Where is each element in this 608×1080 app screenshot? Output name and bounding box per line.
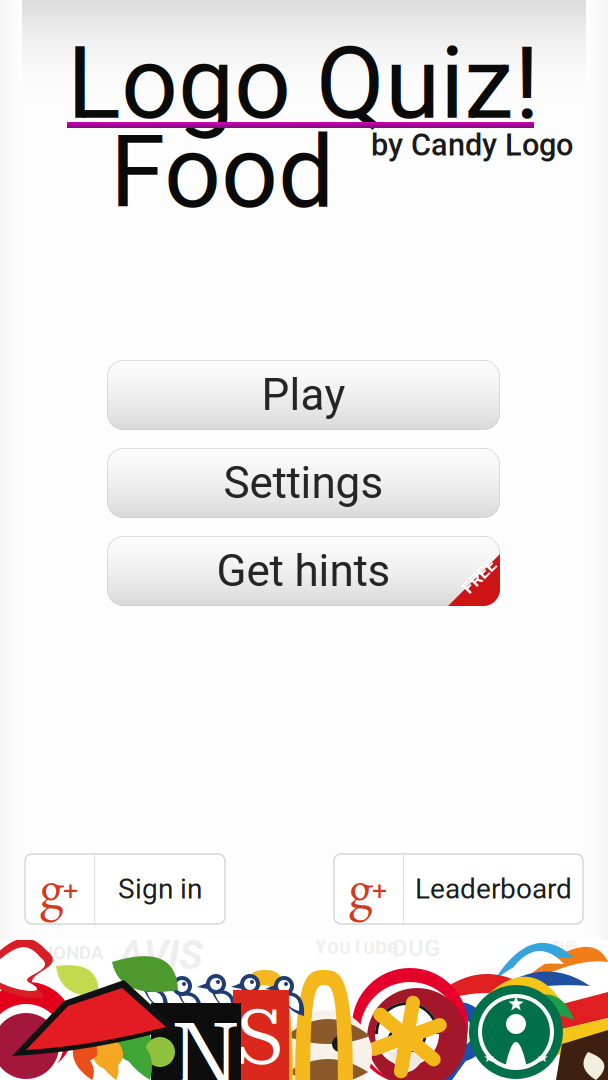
staticText: THE: [552, 938, 577, 954]
staticText: Get hints: [216, 545, 390, 597]
staticText: g: [349, 851, 373, 923]
staticText: N: [171, 1004, 240, 1080]
staticText: Play: [261, 369, 345, 421]
button[interactable]: g: [25, 854, 225, 924]
button[interactable]: g: [334, 854, 583, 924]
staticText: DUG: [392, 934, 440, 962]
staticText: S: [236, 992, 284, 1080]
staticText: by Candy Logo: [371, 127, 573, 163]
staticText: FREE: [459, 566, 500, 586]
staticText: AVIS: [118, 932, 203, 979]
button[interactable]: Settings: [107, 448, 500, 518]
staticText: g: [40, 851, 64, 923]
staticText: +: [372, 875, 387, 907]
staticText: +: [63, 875, 78, 907]
staticText: NORTH: [530, 948, 583, 967]
staticText: YouTube: [314, 934, 399, 959]
staticText: Logo Quiz!: [67, 25, 540, 142]
staticText: Sign in: [118, 873, 202, 905]
staticText: Leaderboard: [415, 873, 572, 905]
staticText: HONDA: [40, 942, 104, 964]
staticText: Settings: [223, 457, 383, 509]
staticText: Food: [110, 114, 334, 231]
button[interactable]: Play: [107, 360, 500, 430]
button[interactable]: Get hints: [107, 536, 500, 606]
